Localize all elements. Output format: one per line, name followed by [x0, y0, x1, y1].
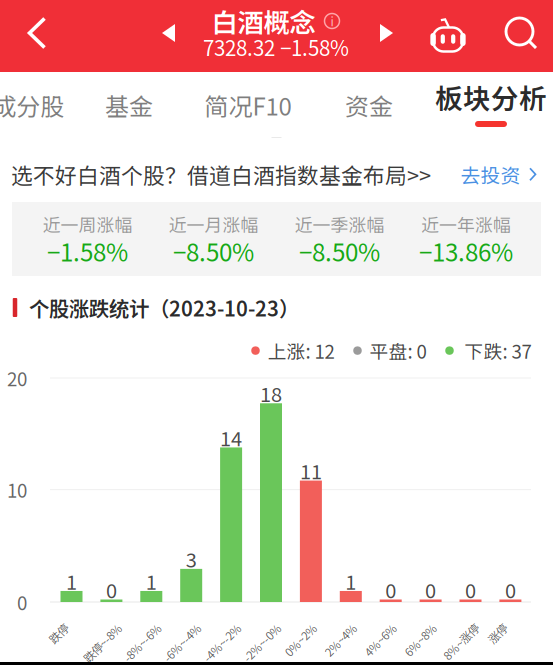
staticText: 0 — [385, 575, 396, 604]
staticText: -8%~-6% — [105, 620, 153, 636]
staticText: 18 — [260, 379, 282, 408]
staticText: 0%~2% — [269, 620, 309, 636]
staticText: 8%~涨停 — [426, 620, 471, 636]
button[interactable]: 选不好白酒个股？借道白酒指数基金布局>> — [0, 138, 553, 202]
staticText: 0 — [505, 575, 516, 604]
staticText: 板块分析 — [435, 77, 547, 117]
staticText: 基金 — [105, 88, 153, 122]
staticText: 1 — [345, 566, 356, 595]
staticText: 简况F10 — [204, 88, 291, 122]
button[interactable]: 简况F10 — [196, 72, 300, 138]
staticText: 平盘: 0 — [369, 337, 426, 364]
button[interactable]: Previous sector — [148, 9, 188, 57]
staticText: -6%~-4% — [145, 620, 193, 636]
staticText: 0 — [17, 588, 27, 615]
staticText: −13.86% — [419, 233, 513, 268]
staticText: 个股涨跌统计（2023-10-23） — [29, 293, 299, 322]
staticText: 10 — [7, 476, 27, 503]
staticText: 0 — [465, 575, 476, 604]
staticText: 下跌: 37 — [464, 337, 531, 364]
staticText: −1.58% — [47, 233, 128, 268]
button[interactable]: 基金 — [77, 72, 181, 138]
button[interactable]: 板块分析 — [431, 72, 551, 138]
button[interactable]: Search — [496, 2, 546, 64]
button[interactable]: 成分股 — [0, 72, 80, 138]
staticText: 选不好白酒个股？借道白酒指数基金布局>> — [11, 159, 431, 190]
staticText: 成分股 — [0, 88, 64, 122]
staticText: 上涨: 12 — [267, 337, 334, 364]
staticText: 20 — [7, 364, 27, 391]
staticText: 近一季涨幅 — [294, 211, 384, 237]
staticText: -2%~-0% — [225, 620, 273, 636]
button[interactable]: Back — [9, 0, 65, 69]
staticText: i — [330, 12, 333, 30]
staticText: 资金 — [345, 88, 393, 122]
staticText: 11 — [300, 456, 322, 485]
staticText: 0 — [425, 575, 436, 604]
staticText: −8.50% — [173, 233, 254, 268]
staticText: 白酒概念 — [211, 2, 315, 40]
staticText: 4%~6% — [349, 620, 389, 636]
staticText: 1 — [66, 566, 77, 595]
staticText: 1 — [146, 566, 157, 595]
staticText: −8.50% — [299, 233, 380, 268]
staticText: -4%~-2% — [185, 620, 233, 636]
staticText: 0 — [106, 575, 117, 604]
staticText: 跌停 — [38, 620, 60, 636]
button[interactable]: AI assistant — [423, 2, 473, 64]
button[interactable]: Next sector — [366, 9, 406, 57]
staticText: 6%~8% — [389, 620, 429, 636]
button[interactable]: 资金 — [317, 72, 421, 138]
staticText: 近一年涨幅 — [421, 211, 511, 237]
staticText: 近一周涨幅 — [42, 211, 132, 237]
staticText: 去投资 — [460, 160, 520, 189]
staticText: 14 — [220, 423, 242, 452]
staticText: 近一月涨幅 — [168, 211, 258, 237]
staticText: 3 — [186, 544, 197, 573]
staticText: 跌停~-8% — [65, 620, 114, 636]
staticText: 7328.32 −1.58% — [203, 32, 349, 62]
staticText: 涨停 — [477, 620, 499, 636]
staticText: 2%~4% — [309, 620, 349, 636]
